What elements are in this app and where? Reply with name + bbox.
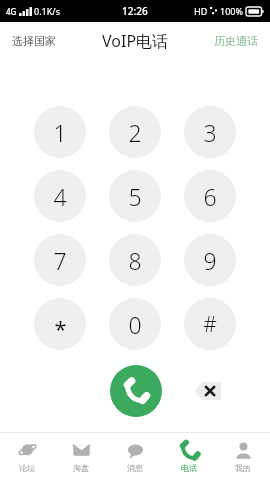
button[interactable]: 5 [109, 170, 161, 222]
button[interactable]: 9 [184, 234, 236, 286]
staticText: 选择国家 [12, 34, 56, 48]
button[interactable]: 论坛 [0, 433, 54, 480]
staticText: 6 [203, 181, 217, 212]
button[interactable]: 4 [34, 170, 86, 222]
button[interactable]: * [34, 298, 86, 350]
button[interactable]: 6 [184, 170, 236, 222]
button[interactable]: 1 [34, 106, 86, 158]
button[interactable]: 8 [109, 234, 161, 286]
staticText: 论坛 [19, 463, 35, 473]
button[interactable]: 选择国家 [0, 26, 68, 56]
staticText: 9 [203, 245, 217, 276]
staticText: 0 [128, 309, 142, 340]
staticText: 100% [220, 5, 243, 17]
button[interactable]: Call [110, 365, 162, 417]
staticText: 历史通话 [214, 34, 258, 48]
staticText: 0.1K/s [34, 5, 60, 17]
button[interactable]: # [184, 298, 236, 350]
staticText: 4 [53, 181, 67, 212]
button[interactable]: 7 [34, 234, 86, 286]
button[interactable]: 我的 [216, 433, 270, 480]
button[interactable]: 电话 [162, 433, 216, 480]
button[interactable]: 消息 [108, 433, 162, 480]
staticText: 8 [128, 245, 142, 276]
staticText: 1 [53, 117, 67, 148]
staticText: 5 [128, 181, 142, 212]
staticText: 7 [53, 245, 67, 276]
button[interactable]: 历史通话 [202, 26, 270, 56]
staticText: 我的 [235, 463, 251, 473]
staticText: 电话 [181, 463, 197, 473]
staticText: HD [194, 5, 208, 17]
button[interactable]: 淘盘 [54, 433, 108, 480]
staticText: 2 [128, 117, 142, 148]
staticText: 12:26 [122, 4, 148, 18]
staticText: VoIP电话 [102, 30, 169, 52]
staticText: 3 [203, 117, 217, 148]
staticText: 淘盘 [73, 463, 89, 473]
staticText: # [203, 310, 217, 339]
button[interactable]: 0 [109, 298, 161, 350]
button[interactable]: 3 [184, 106, 236, 158]
staticText: 消息 [127, 463, 143, 473]
button[interactable]: Delete [190, 373, 226, 409]
staticText: * [54, 313, 67, 343]
button[interactable]: 2 [109, 106, 161, 158]
staticText: 4G [6, 6, 17, 17]
